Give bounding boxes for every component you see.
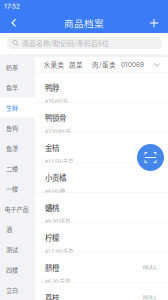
staticText: ¥12.50/千克 [45, 157, 73, 165]
button[interactable]: 奶茶 [0, 57, 35, 77]
button[interactable]: 柠檬 [35, 223, 168, 253]
button[interactable]: 鱼钩 [0, 118, 35, 138]
button[interactable]: 脐橙 [35, 253, 168, 283]
button[interactable]: 水果类 [43, 57, 65, 72]
button[interactable]: 立白 [0, 280, 35, 300]
staticText: 鱼钩 [6, 123, 18, 132]
button[interactable]: 肉/蛋类 [93, 57, 115, 72]
staticText: 脐橙 [45, 262, 59, 273]
staticText: NULL [143, 264, 157, 270]
staticText: 鱼漂 [6, 144, 18, 153]
staticText: NULL [143, 144, 157, 150]
staticText: 金桔 [45, 142, 59, 153]
staticText: 17:52 [4, 3, 20, 10]
staticText: 商品档案 [64, 16, 104, 30]
staticText: ¥220.00/斤 [45, 127, 71, 135]
staticText: 二楼 [6, 164, 18, 173]
staticText: 测试 [6, 245, 18, 254]
staticText: ¥9.20/千克 [45, 217, 70, 225]
button[interactable]: 金桔 [35, 133, 168, 163]
button[interactable]: 二楼 [0, 158, 35, 178]
staticText: 蔬菜 [69, 60, 83, 69]
staticText: 小贡橘 [45, 172, 66, 183]
button[interactable]: 鱼漂 [0, 138, 35, 158]
staticText: NULL [143, 294, 157, 300]
staticText: ¥5.50/箱 [45, 187, 65, 195]
staticText: 鱼竿 [6, 83, 18, 92]
staticText: ¥6.20/千克 [45, 277, 70, 285]
button[interactable]: 小贡橘 [35, 163, 168, 193]
button[interactable]: 酒 [0, 219, 35, 239]
staticText: 奶茶 [6, 63, 18, 72]
staticText: 蟠桃 [45, 202, 59, 213]
button[interactable]: More filters [152, 57, 162, 72]
button[interactable]: 电子产品 [0, 199, 35, 219]
staticText: ¥25.00/斤 [45, 97, 68, 105]
staticText: 010069 [121, 61, 144, 69]
staticText: 鸭锁骨 [45, 112, 66, 123]
button[interactable]: 生鲜 [0, 97, 35, 118]
button[interactable]: Add product [144, 13, 164, 33]
button[interactable]: Scan barcode [137, 144, 164, 171]
button[interactable]: 010069 [121, 57, 144, 72]
staticText: 肉/蛋类 [92, 60, 116, 69]
staticText: 生鲜 [6, 103, 18, 112]
button[interactable]: 一楼 [0, 178, 35, 199]
staticText: 电子产品 [4, 204, 28, 213]
staticText: 商品名称/助记码/条码后6位 [22, 38, 109, 48]
button[interactable]: 测试 [0, 239, 35, 259]
button[interactable]: 蔬菜 [68, 57, 84, 72]
button[interactable]: 鸭脖 [35, 73, 168, 103]
staticText: 水果类 [43, 60, 64, 69]
button[interactable]: 蟠桃 [35, 193, 168, 223]
button[interactable]: 鱼竿 [0, 77, 35, 97]
staticText: 鸭脖 [45, 82, 59, 93]
staticText: 柠檬 [45, 232, 59, 243]
staticText: 酒 [6, 225, 12, 234]
button[interactable]: 荔枝 [35, 283, 168, 300]
staticText: 荔枝 [45, 292, 59, 300]
staticText: 一楼 [6, 184, 18, 193]
button[interactable]: Back [4, 13, 24, 33]
staticText: ¥17.20/千克 [45, 247, 73, 255]
staticText: 四楼 [6, 265, 18, 274]
staticText: 立白 [6, 285, 18, 294]
button[interactable]: 四楼 [0, 259, 35, 280]
button[interactable]: 鸭锁骨 [35, 103, 168, 133]
